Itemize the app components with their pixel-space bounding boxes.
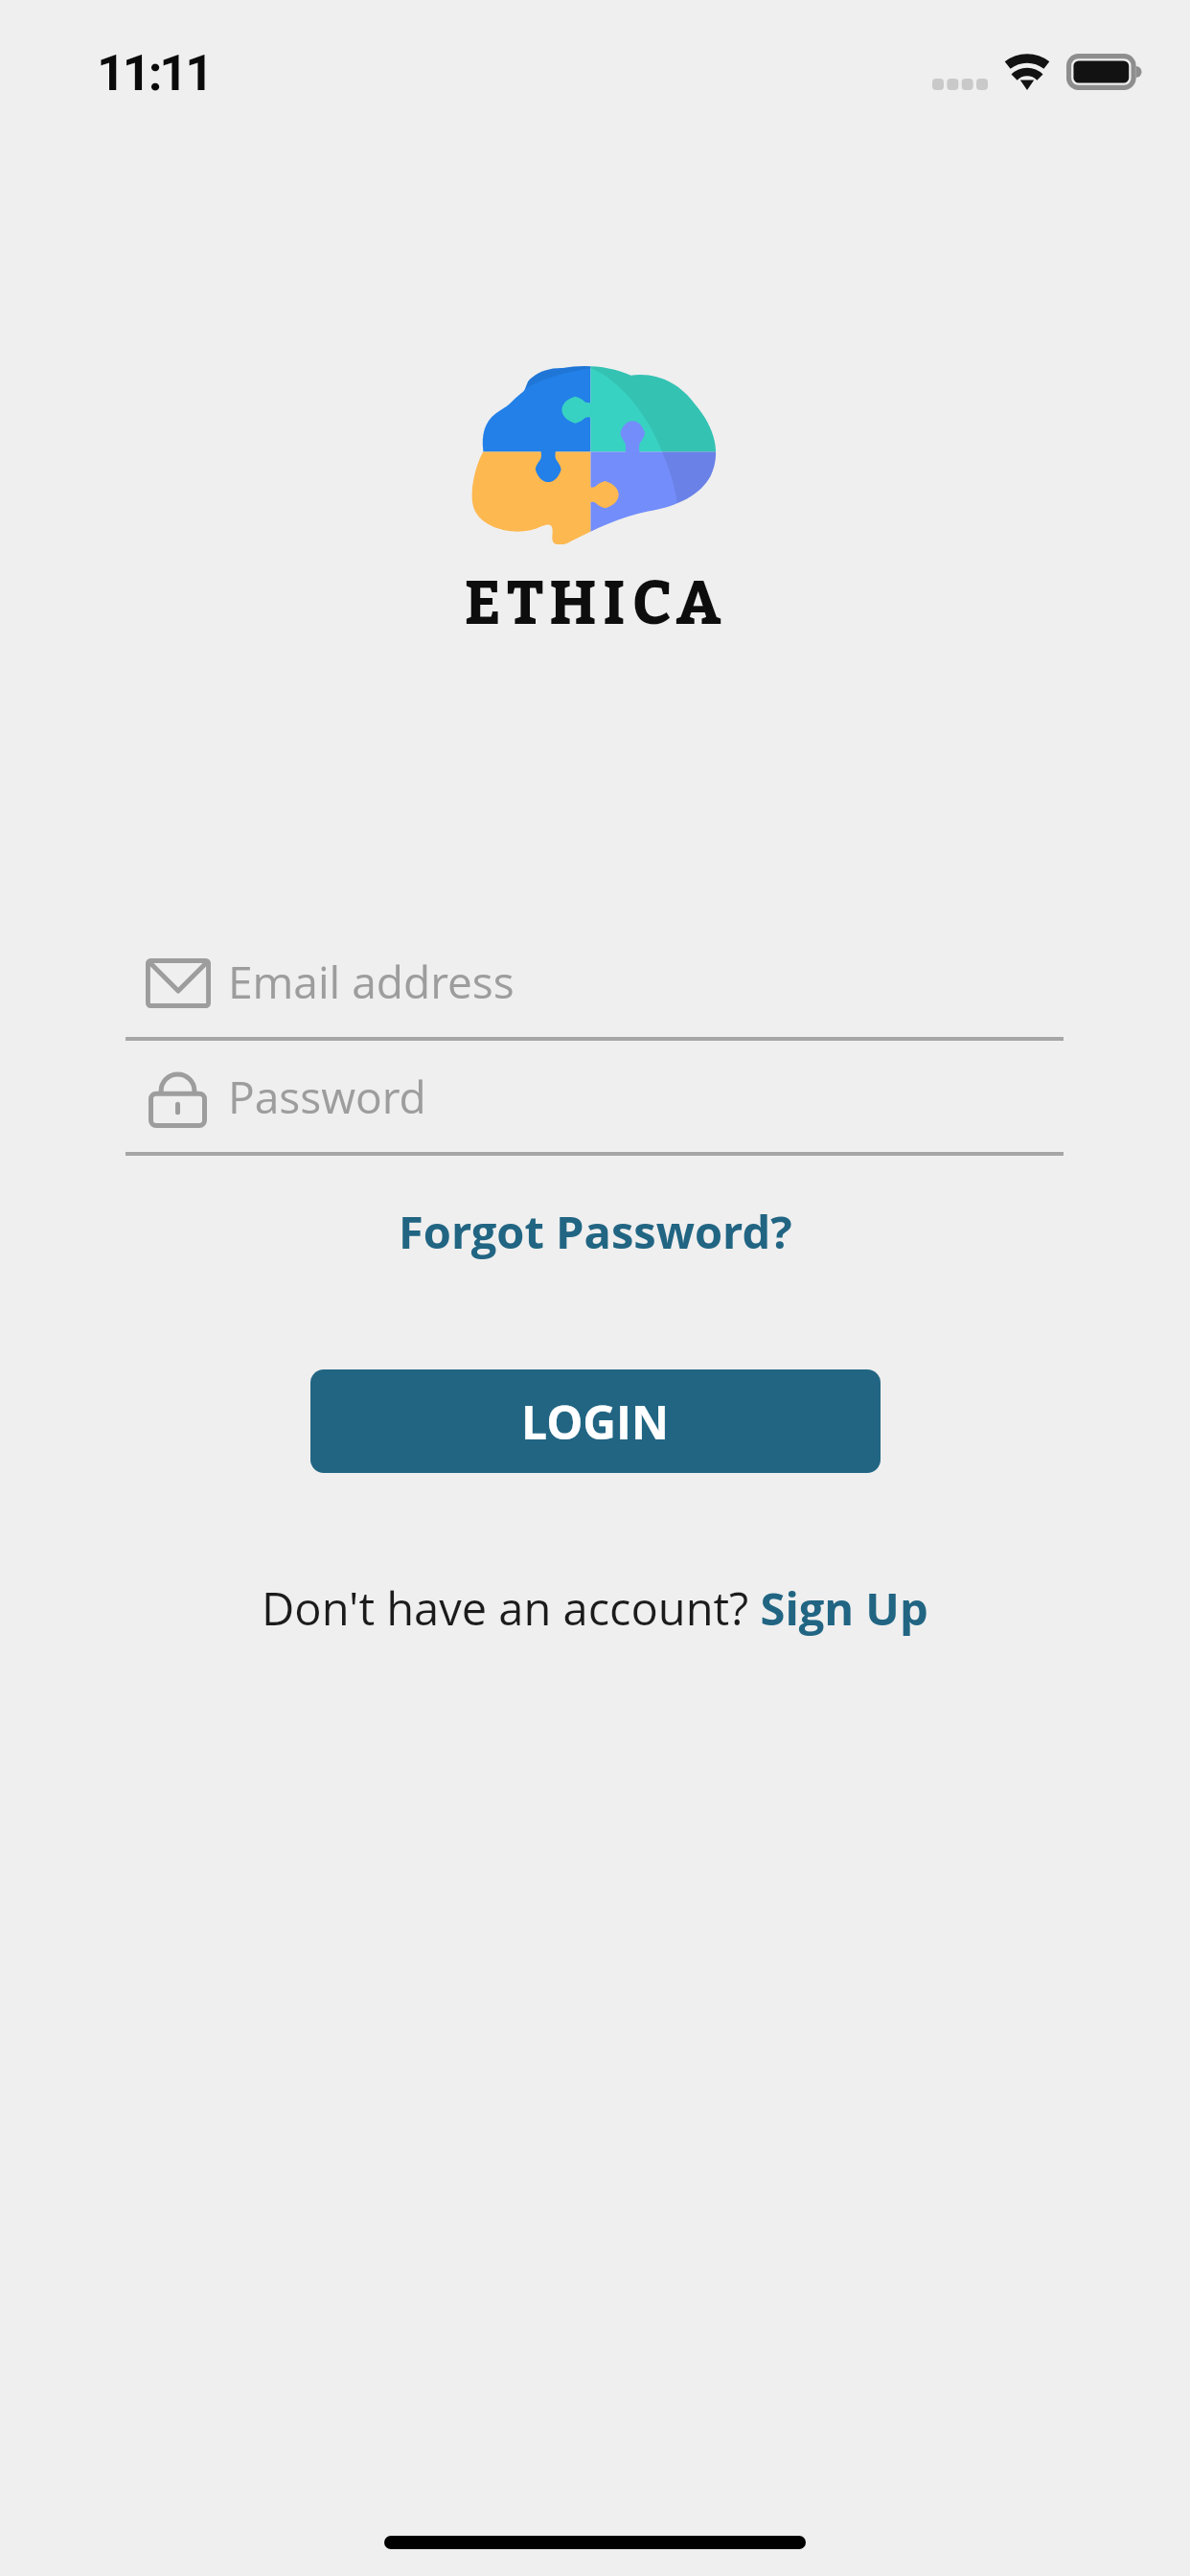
button[interactable]: Email address: [126, 920, 1064, 1041]
other: Wi-Fi: [1003, 54, 1051, 90]
button[interactable]: Don't have an account? Sign Up: [239, 1566, 951, 1650]
staticText: 11:11: [97, 44, 212, 103]
staticText: Forgot Password?: [399, 1201, 792, 1262]
other: Signal: [932, 79, 988, 90]
button[interactable]: Forgot Password?: [372, 1189, 819, 1274]
button[interactable]: LOGIN: [310, 1369, 881, 1473]
staticText: Password: [228, 1067, 426, 1127]
button[interactable]: Password: [126, 1038, 1064, 1156]
staticText: LOGIN: [521, 1391, 670, 1453]
staticText: Don't have an account? Sign Up: [262, 1577, 928, 1639]
staticText: Email address: [228, 952, 515, 1012]
other: Battery: [1066, 54, 1145, 90]
staticText: ETHICA: [464, 544, 727, 665]
